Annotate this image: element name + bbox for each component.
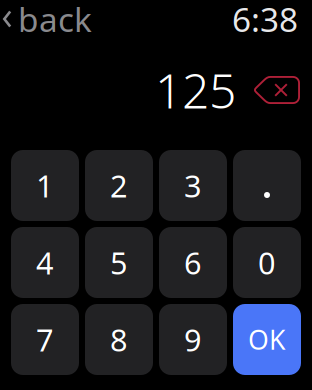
staticText: 7 — [36, 319, 54, 360]
button[interactable]: 7 — [11, 304, 79, 375]
staticText: 6:38 — [232, 0, 298, 41]
button[interactable]: 4 — [11, 227, 79, 298]
button[interactable]: 1 — [11, 150, 79, 221]
button[interactable]: 2 — [85, 150, 153, 221]
staticText: 0 — [258, 242, 276, 283]
staticText: 125 — [155, 58, 236, 122]
staticText: OK — [248, 322, 286, 357]
staticText: 4 — [36, 242, 54, 283]
button[interactable]: 6 — [159, 227, 227, 298]
staticText: 8 — [110, 319, 128, 360]
staticText: back — [18, 0, 92, 41]
staticText: 6 — [184, 242, 202, 283]
staticText: 3 — [184, 165, 202, 206]
staticText: 1 — [36, 165, 54, 206]
staticText: 5 — [110, 242, 128, 283]
button[interactable]: 5 — [85, 227, 153, 298]
button[interactable]: 3 — [159, 150, 227, 221]
button[interactable]: Decimal point — [233, 150, 301, 221]
staticText: 9 — [184, 319, 202, 360]
button[interactable]: Delete — [236, 64, 312, 116]
button[interactable]: Back — [0, 0, 100, 38]
button[interactable]: 8 — [85, 304, 153, 375]
button[interactable]: 0 — [233, 227, 301, 298]
button[interactable]: 9 — [159, 304, 227, 375]
button[interactable]: OK — [233, 304, 301, 375]
staticText: 2 — [110, 165, 128, 206]
